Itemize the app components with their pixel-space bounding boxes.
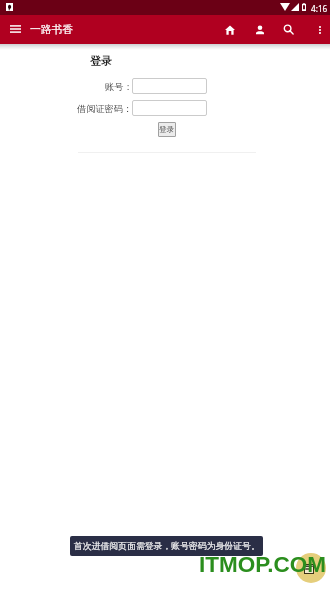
button[interactable]: Download [296,553,326,583]
staticText: 登录 [159,125,175,135]
button[interactable]: 登录 [158,122,176,137]
staticText: 账号： [105,81,133,93]
staticText: ITMOP.COM [199,552,327,577]
button[interactable]: 借阅证密码： [132,100,207,116]
button[interactable]: 首次进借阅页面需登录，账号密码为身份证号。 [70,536,263,556]
staticText: 借阅证密码： [77,103,133,115]
button[interactable]: 账号： [132,78,207,94]
staticText: 登录 [90,54,112,68]
staticText: 4:16 [311,3,328,14]
staticText: 一路书香 [30,23,74,37]
staticText: 首次进借阅页面需登录，账号密码为身份证号。 [74,540,260,551]
button[interactable]: More options [305,15,330,44]
button[interactable]: Search [274,15,303,44]
button[interactable]: Open navigation menu [0,15,30,44]
button[interactable]: Home [215,15,244,44]
button[interactable]: Account [245,15,274,44]
